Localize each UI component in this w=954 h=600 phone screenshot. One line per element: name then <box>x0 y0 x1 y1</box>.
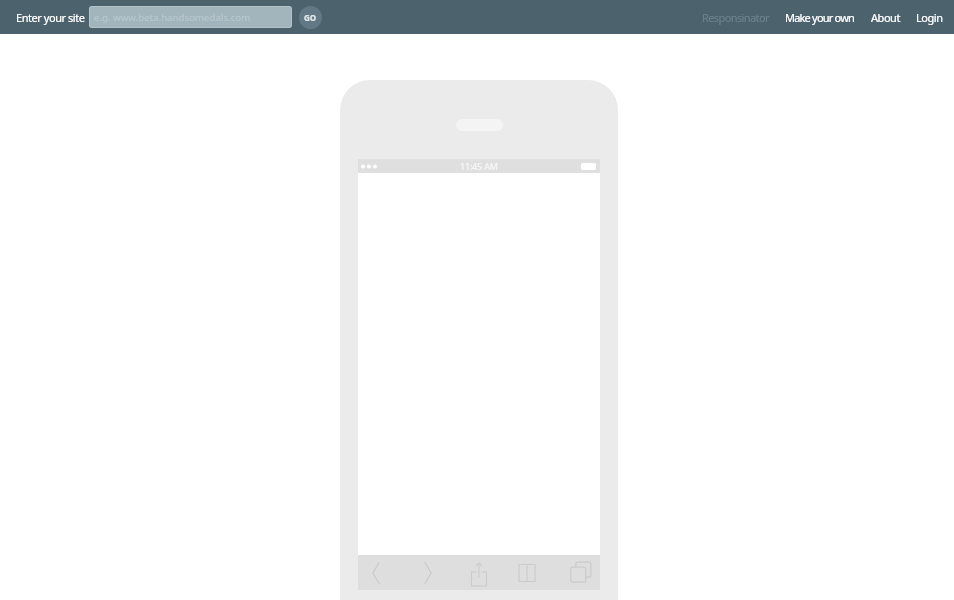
staticText: e.g. www.beta.handsomedals.com <box>94 11 251 24</box>
button[interactable]: Bookmarks <box>509 555 545 590</box>
button[interactable]: Login <box>916 6 943 29</box>
staticText: About <box>871 10 900 25</box>
button[interactable]: GO <box>299 6 322 29</box>
staticText: 11:45 AM <box>460 160 498 172</box>
button[interactable]: e.g. www.beta.handsomedals.com <box>89 6 292 28</box>
button[interactable]: Share <box>461 555 497 590</box>
staticText: Make your own <box>785 10 855 25</box>
button[interactable]: Tabs <box>562 555 598 590</box>
staticText: Enter your site <box>16 10 85 25</box>
button[interactable]: Make your own <box>785 6 855 29</box>
staticText: GO <box>304 12 317 23</box>
staticText: Login <box>916 10 943 25</box>
button[interactable]: About <box>871 6 900 29</box>
staticText: Responsinator <box>702 10 769 25</box>
button[interactable]: Responsinator <box>702 6 769 29</box>
